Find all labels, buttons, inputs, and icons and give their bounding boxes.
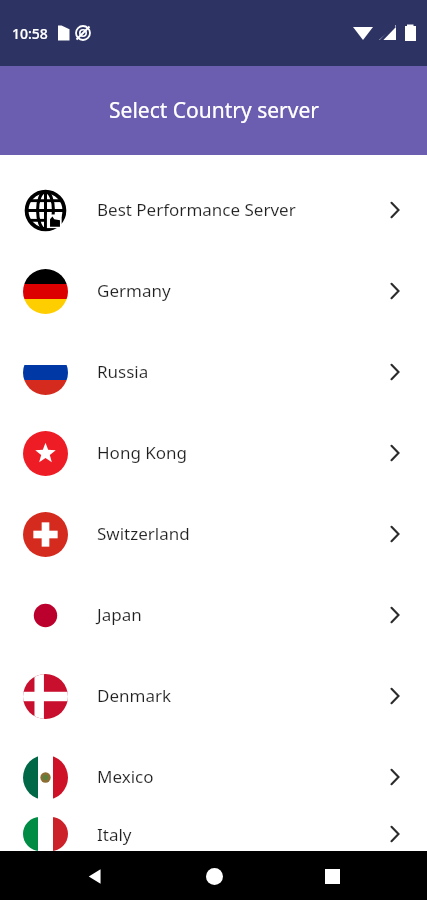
button[interactable]: Mexico: [0, 736, 427, 817]
button[interactable]: Japan: [0, 574, 427, 655]
staticText: Japan: [97, 603, 385, 626]
button[interactable]: Best Performance Server: [0, 169, 427, 250]
button[interactable]: Denmark: [0, 655, 427, 736]
staticText: Select Country server: [109, 96, 319, 125]
staticText: Mexico: [97, 765, 385, 788]
button[interactable]: Recent apps: [308, 852, 356, 900]
button[interactable]: Germany: [0, 250, 427, 331]
button[interactable]: Hong Kong: [0, 412, 427, 493]
button[interactable]: Italy: [0, 817, 427, 851]
staticText: Italy: [97, 823, 385, 846]
staticText: Germany: [97, 279, 385, 302]
button[interactable]: Back: [71, 852, 119, 900]
staticText: Switzerland: [97, 522, 385, 545]
button[interactable]: Russia: [0, 331, 427, 412]
staticText: 10:58: [12, 24, 48, 43]
staticText: Best Performance Server: [97, 198, 385, 221]
staticText: Hong Kong: [97, 441, 385, 464]
button[interactable]: Home: [190, 852, 238, 900]
staticText: Russia: [97, 360, 385, 383]
staticText: Denmark: [97, 684, 385, 707]
button[interactable]: Switzerland: [0, 493, 427, 574]
